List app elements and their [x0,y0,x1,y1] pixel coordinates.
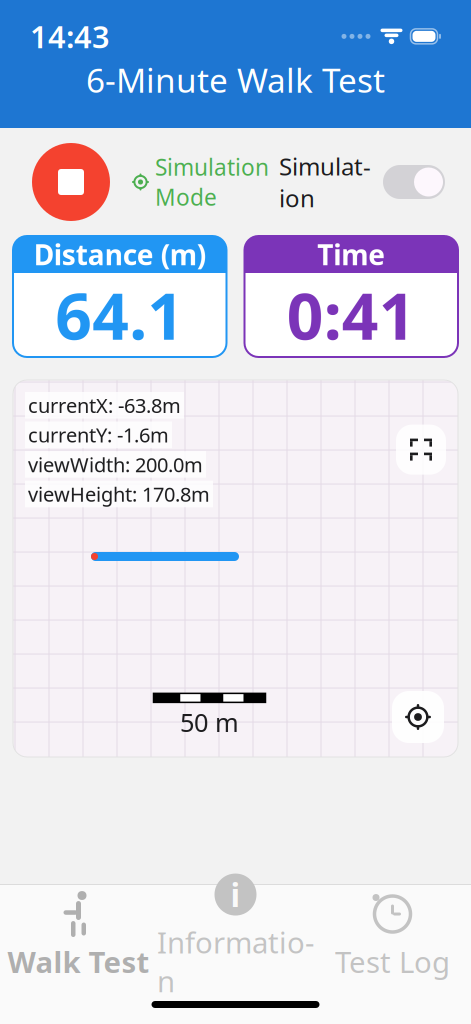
staticText: 50 m [180,705,239,739]
staticText: Simulation Mode [155,152,269,212]
staticText: viewHeight: 170.8m [28,481,210,507]
staticText: Simulation [279,150,371,214]
staticText: Time [317,236,385,273]
staticText: i [230,873,240,916]
staticText: 64.1 [55,272,184,357]
staticText: viewWidth: 200.0m [28,451,203,478]
button[interactable]: Expand map [396,425,446,475]
staticText: Test Log [335,942,450,981]
staticText: Information [157,922,314,1000]
staticText: 0:41 [287,272,416,357]
staticText: currentY: -1.6m [28,422,169,448]
staticText: Distance (m) [34,236,206,273]
staticText: 6-Minute Walk Test [86,58,385,102]
button[interactable]: Simulation [279,150,445,214]
staticText: currentX: -63.8m [28,392,181,419]
button[interactable]: Walk Test [0,893,157,979]
button[interactable]: i [157,893,314,979]
staticText: 14:43 [30,16,110,57]
button[interactable]: Center on current location [392,691,444,743]
staticText: Walk Test [7,942,149,981]
button[interactable]: Stop test [32,143,110,221]
button[interactable]: Test Log [314,893,471,979]
